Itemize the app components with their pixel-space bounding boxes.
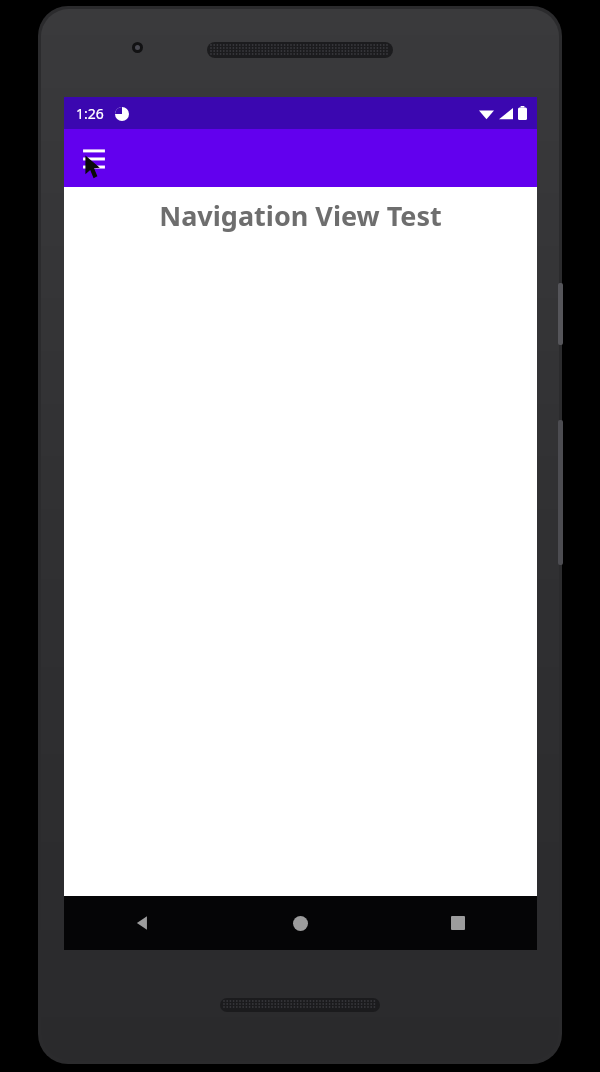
button[interactable]: Recent apps xyxy=(379,896,537,950)
staticText: Navigation View Test xyxy=(64,197,537,234)
button[interactable]: Back xyxy=(64,896,221,950)
staticText: 1:26 xyxy=(76,104,104,123)
button[interactable]: Home xyxy=(221,896,379,950)
button[interactable]: Open navigation drawer xyxy=(70,134,118,182)
